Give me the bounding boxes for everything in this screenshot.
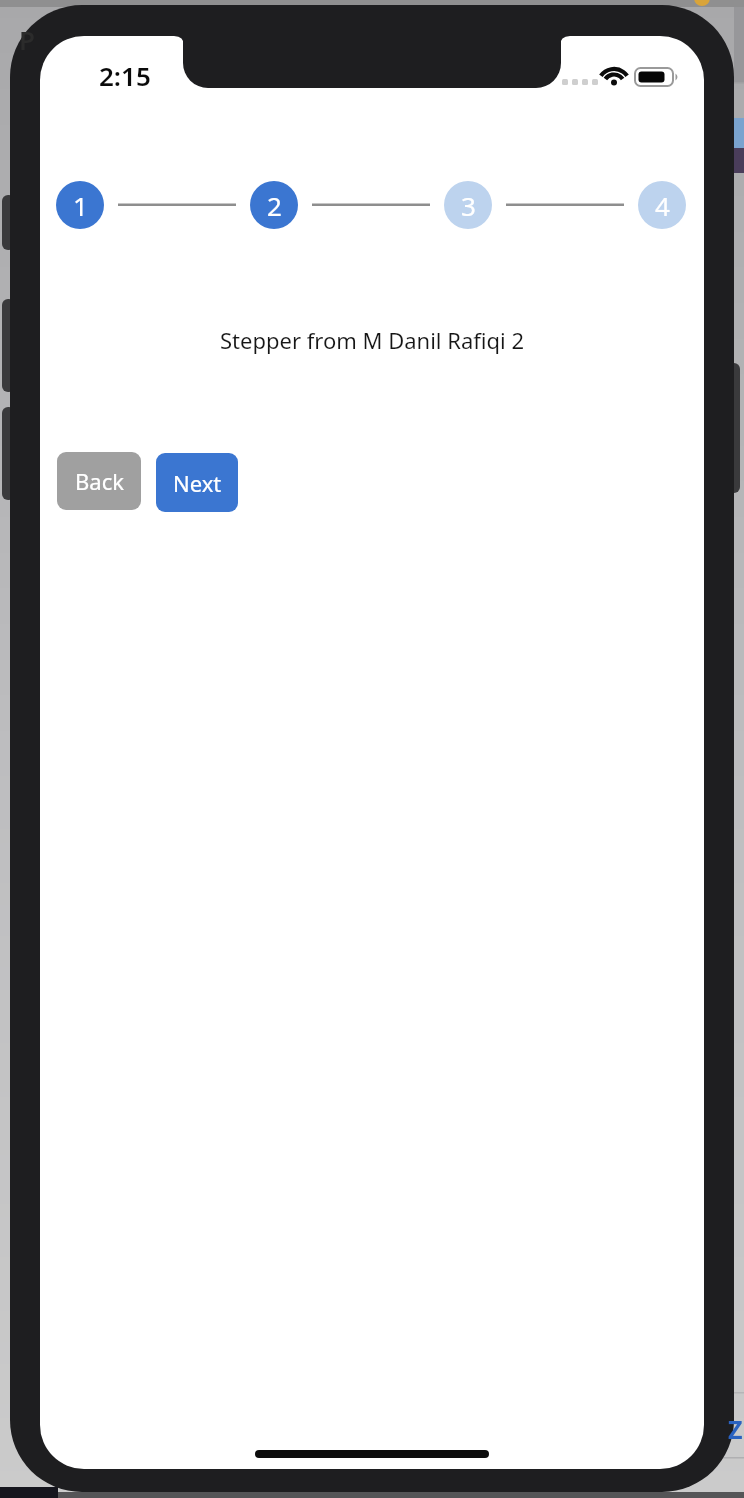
button[interactable]: 2 <box>250 181 298 229</box>
staticText: Stepper from M Danil Rafiqi 2 <box>220 325 525 355</box>
staticText: 1 <box>73 188 88 223</box>
button[interactable]: 1 <box>56 181 104 229</box>
staticText: P <box>19 22 35 57</box>
staticText: Next <box>173 468 222 498</box>
button[interactable]: 3 <box>444 181 492 229</box>
staticText: 2 <box>267 188 282 223</box>
staticText: Back <box>75 466 124 496</box>
staticText: Z <box>728 1412 743 1446</box>
button[interactable]: Next <box>156 453 238 512</box>
button[interactable]: 4 <box>638 181 686 229</box>
staticText: 3 <box>461 188 476 223</box>
button[interactable]: Back <box>57 452 141 510</box>
staticText: 2:15 <box>99 58 151 90</box>
staticText: 4 <box>655 188 670 223</box>
